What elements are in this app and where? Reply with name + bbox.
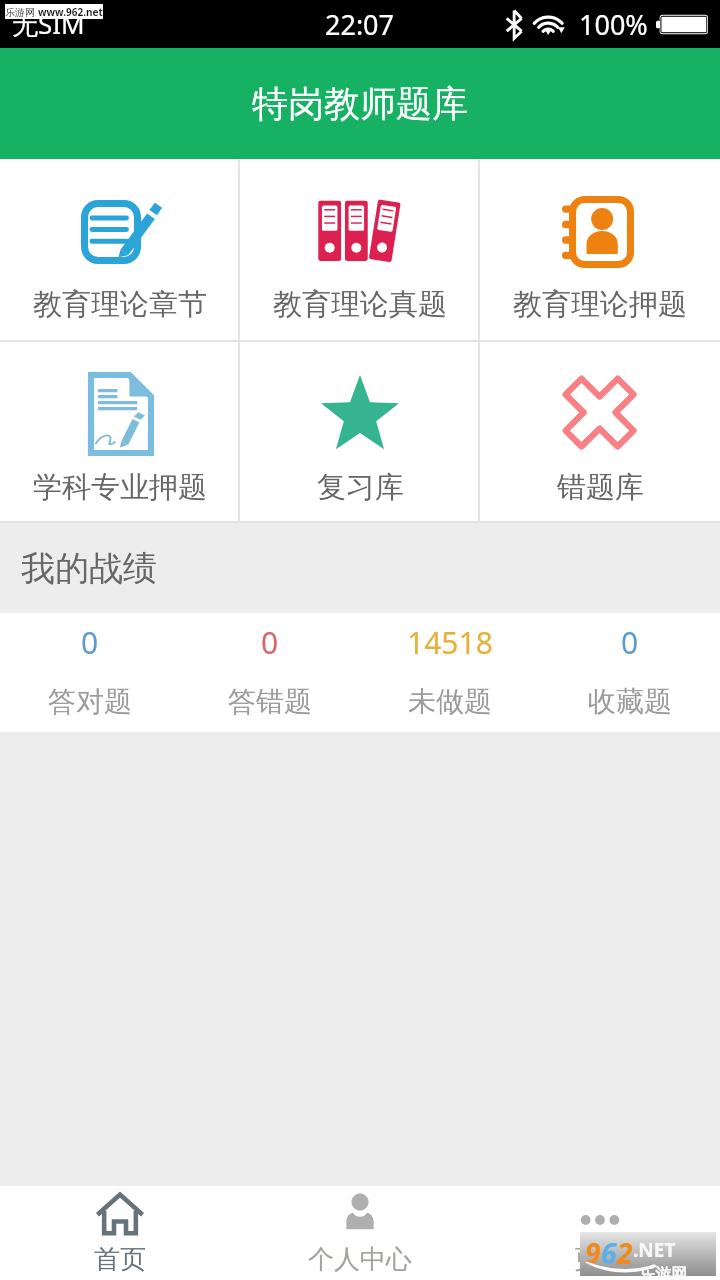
staticText: 2 bbox=[617, 1234, 633, 1272]
staticText: 复习库 bbox=[317, 469, 404, 506]
staticText: 更多 bbox=[574, 1243, 626, 1276]
staticText: 0 bbox=[81, 622, 99, 663]
staticText: 乐游网 bbox=[5, 6, 35, 19]
button[interactable]: 14518 bbox=[360, 613, 540, 732]
button[interactable]: 复习库 bbox=[240, 342, 480, 521]
staticText: 9 bbox=[585, 1234, 601, 1272]
staticText: 首页 bbox=[94, 1243, 146, 1276]
button[interactable]: 教育理论押题 bbox=[480, 159, 720, 340]
staticText: 14518 bbox=[407, 622, 493, 663]
button[interactable]: 教育理论真题 bbox=[240, 159, 480, 340]
staticText: 特岗教师题库 bbox=[252, 81, 468, 126]
staticText: 个人中心 bbox=[308, 1243, 412, 1276]
staticText: 100% bbox=[579, 6, 648, 43]
staticText: 错题库 bbox=[557, 469, 644, 506]
staticText: .NET bbox=[633, 1237, 676, 1263]
button[interactable]: 教育理论章节 bbox=[0, 159, 240, 340]
staticText: 6 bbox=[601, 1234, 617, 1272]
staticText: 答错题 bbox=[228, 684, 312, 719]
staticText: 教育理论章节 bbox=[33, 286, 207, 323]
button[interactable]: 学科专业押题 bbox=[0, 342, 240, 521]
staticText: 教育理论押题 bbox=[513, 286, 687, 323]
button[interactable]: 个人中心 bbox=[240, 1186, 480, 1280]
staticText: 收藏题 bbox=[588, 684, 672, 719]
staticText: 未做题 bbox=[408, 684, 492, 719]
staticText: 乐游网 bbox=[639, 1265, 687, 1276]
button[interactable]: 更多 bbox=[480, 1186, 720, 1280]
button[interactable]: 0 bbox=[0, 613, 180, 732]
button[interactable]: 错题库 bbox=[480, 342, 720, 521]
staticText: 学科专业押题 bbox=[33, 469, 207, 506]
button[interactable]: 首页 bbox=[0, 1186, 240, 1280]
staticText: www.962.net bbox=[38, 5, 103, 19]
staticText: 答对题 bbox=[48, 684, 132, 719]
staticText: 0 bbox=[621, 622, 639, 663]
staticText: 无SIM bbox=[12, 6, 85, 42]
button[interactable]: 0 bbox=[180, 613, 360, 732]
staticText: 教育理论真题 bbox=[273, 286, 447, 323]
button[interactable]: 0 bbox=[540, 613, 720, 732]
staticText: 22:07 bbox=[325, 6, 395, 43]
staticText: 我的战绩 bbox=[21, 547, 157, 590]
staticText: 0 bbox=[261, 622, 279, 663]
